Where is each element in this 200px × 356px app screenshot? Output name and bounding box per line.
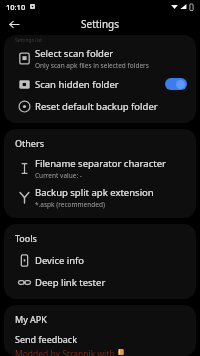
button[interactable]: Filename separator character <box>4 154 196 183</box>
staticText: Filename separator character <box>35 157 166 170</box>
button[interactable]: Modded by Strannik with <box>4 348 196 356</box>
staticText: Device info <box>35 254 85 267</box>
button[interactable]: Reset default backup folder <box>4 95 196 117</box>
button[interactable]: Deep link tester <box>4 271 196 293</box>
staticText: 10:10 <box>6 2 26 12</box>
staticText: Tools <box>15 232 37 244</box>
staticText: Settings list <box>15 37 43 44</box>
button[interactable]: Backup split apk extension <box>4 183 196 212</box>
staticText: My APK <box>15 313 47 325</box>
staticText: Others <box>15 137 44 149</box>
button[interactable]: Scan hidden folder toggle <box>165 78 187 90</box>
staticText: Current value: - <box>35 171 82 180</box>
button[interactable]: Send feedback <box>4 330 196 348</box>
staticText: Backup split apk extension <box>35 186 154 199</box>
staticText: Scan hidden folder <box>35 78 119 91</box>
staticText: Settings <box>81 17 120 31</box>
staticText: Deep link tester <box>35 276 106 289</box>
staticText: Send feedback <box>15 333 77 345</box>
staticText: Only scan apk files in selected folders <box>35 61 149 70</box>
button[interactable]: Select scan folder <box>4 44 196 73</box>
staticText: Modded by Strannik with <box>15 348 115 356</box>
button[interactable]: Device info <box>4 249 196 271</box>
button[interactable]: Back <box>5 15 23 33</box>
button[interactable]: Scan hidden folder <box>4 73 196 95</box>
staticText: Select scan folder <box>35 47 114 60</box>
staticText: Reset default backup folder <box>35 100 158 113</box>
staticText: *.aspk (recommended) <box>35 200 105 209</box>
